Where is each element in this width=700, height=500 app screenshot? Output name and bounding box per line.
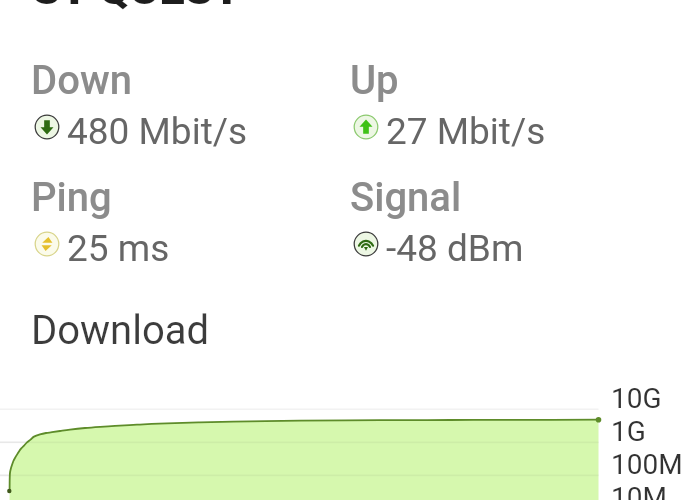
staticText: 10G bbox=[611, 382, 662, 415]
staticText: Down bbox=[31, 57, 132, 104]
staticText: 10M bbox=[611, 481, 667, 500]
staticText: 25 ms bbox=[67, 227, 170, 270]
staticText: Ping bbox=[31, 174, 112, 221]
other: Ping latency bbox=[34, 231, 60, 257]
other: Upload speed bbox=[353, 114, 379, 140]
staticText: ST QUEST bbox=[32, 0, 242, 15]
staticText: Signal bbox=[350, 174, 462, 221]
staticText: 100M bbox=[611, 448, 683, 481]
staticText: Download bbox=[31, 307, 210, 354]
other: Signal strength bbox=[353, 231, 379, 257]
staticText: Up bbox=[350, 57, 399, 104]
staticText: 1G bbox=[611, 415, 646, 448]
staticText: 27 Mbit/s bbox=[386, 110, 546, 153]
button[interactable]: Signal bbox=[350, 174, 488, 221]
button[interactable]: Up bbox=[350, 57, 510, 104]
staticText: 480 Mbit/s bbox=[67, 110, 248, 153]
button[interactable]: Down bbox=[31, 57, 212, 104]
staticText: -48 dBm bbox=[386, 227, 524, 270]
other: Download speed bbox=[34, 114, 60, 140]
button[interactable]: Ping bbox=[31, 174, 134, 221]
